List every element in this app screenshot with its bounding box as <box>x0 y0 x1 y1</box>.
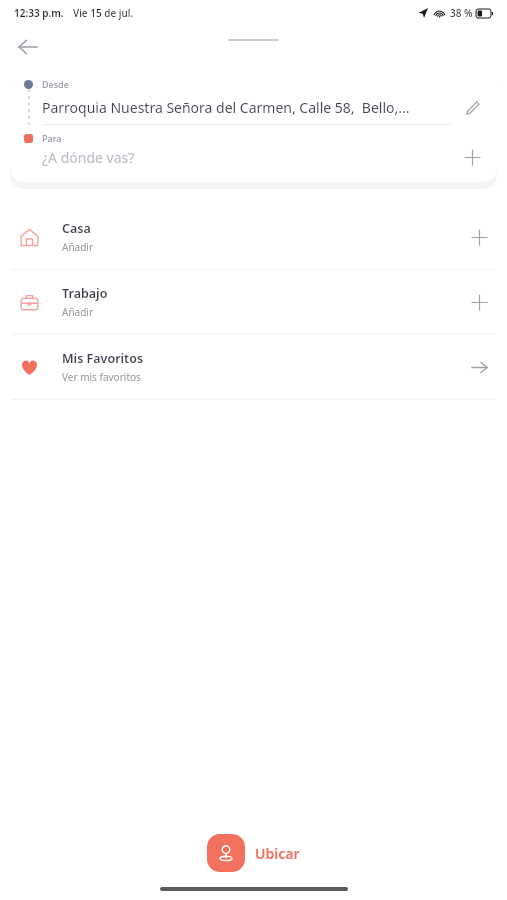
button[interactable]: Mis Favoritos <box>0 335 507 399</box>
staticText: Añadir <box>62 240 94 254</box>
staticText: 12:33 p.m. <box>14 6 64 20</box>
button[interactable]: Ubicar <box>207 834 300 872</box>
staticText: 38 % <box>450 6 473 20</box>
staticText: Trabajo <box>62 285 108 302</box>
staticText: ¿A dónde vas? <box>42 148 459 167</box>
button[interactable]: Parroquia Nuestra Señora del Carmen, Cal… <box>24 90 485 124</box>
staticText: Vie 15 de jul. <box>73 6 134 20</box>
staticText: Mis Favoritos <box>62 350 144 367</box>
staticText: Desde <box>42 78 69 90</box>
staticText: Añadir <box>62 305 94 319</box>
staticText: Ver mis favoritos <box>62 370 141 384</box>
button[interactable]: Add Casa <box>465 223 493 251</box>
button[interactable]: Trabajo <box>0 270 507 334</box>
staticText: Ubicar <box>255 844 300 863</box>
staticText: Parroquia Nuestra Señora del Carmen, Cal… <box>42 98 453 117</box>
button[interactable]: Back <box>10 29 46 65</box>
button[interactable]: Add destination <box>459 144 485 170</box>
staticText: Para <box>42 132 62 144</box>
button[interactable]: Casa <box>0 205 507 269</box>
staticText: Casa <box>62 220 91 237</box>
button[interactable]: Add Trabajo <box>465 288 493 316</box>
button[interactable]: ¿A dónde vas? <box>24 144 485 170</box>
button[interactable]: Open Mis Favoritos <box>465 353 493 381</box>
button[interactable]: Edit origin <box>459 94 485 120</box>
